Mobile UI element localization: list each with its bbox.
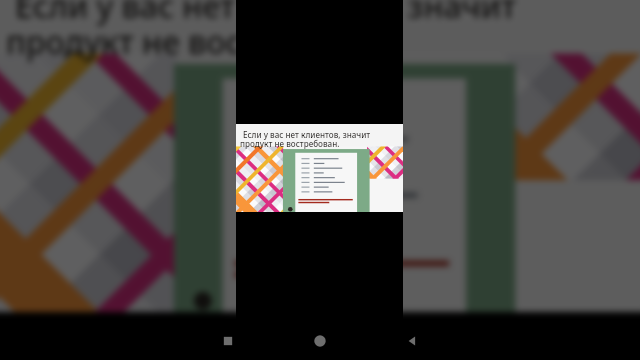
staticText: продукт не востребован. [6,20,398,63]
button[interactable]: Home [307,328,333,354]
button[interactable]: Back [399,328,425,354]
staticText: Если у вас нет клиентов, значит [15,0,517,27]
staticText: Если у вас нет клиентов, значит [243,129,371,140]
staticText: продукт не востребован. [240,138,340,149]
button[interactable]: Recent apps [215,328,241,354]
